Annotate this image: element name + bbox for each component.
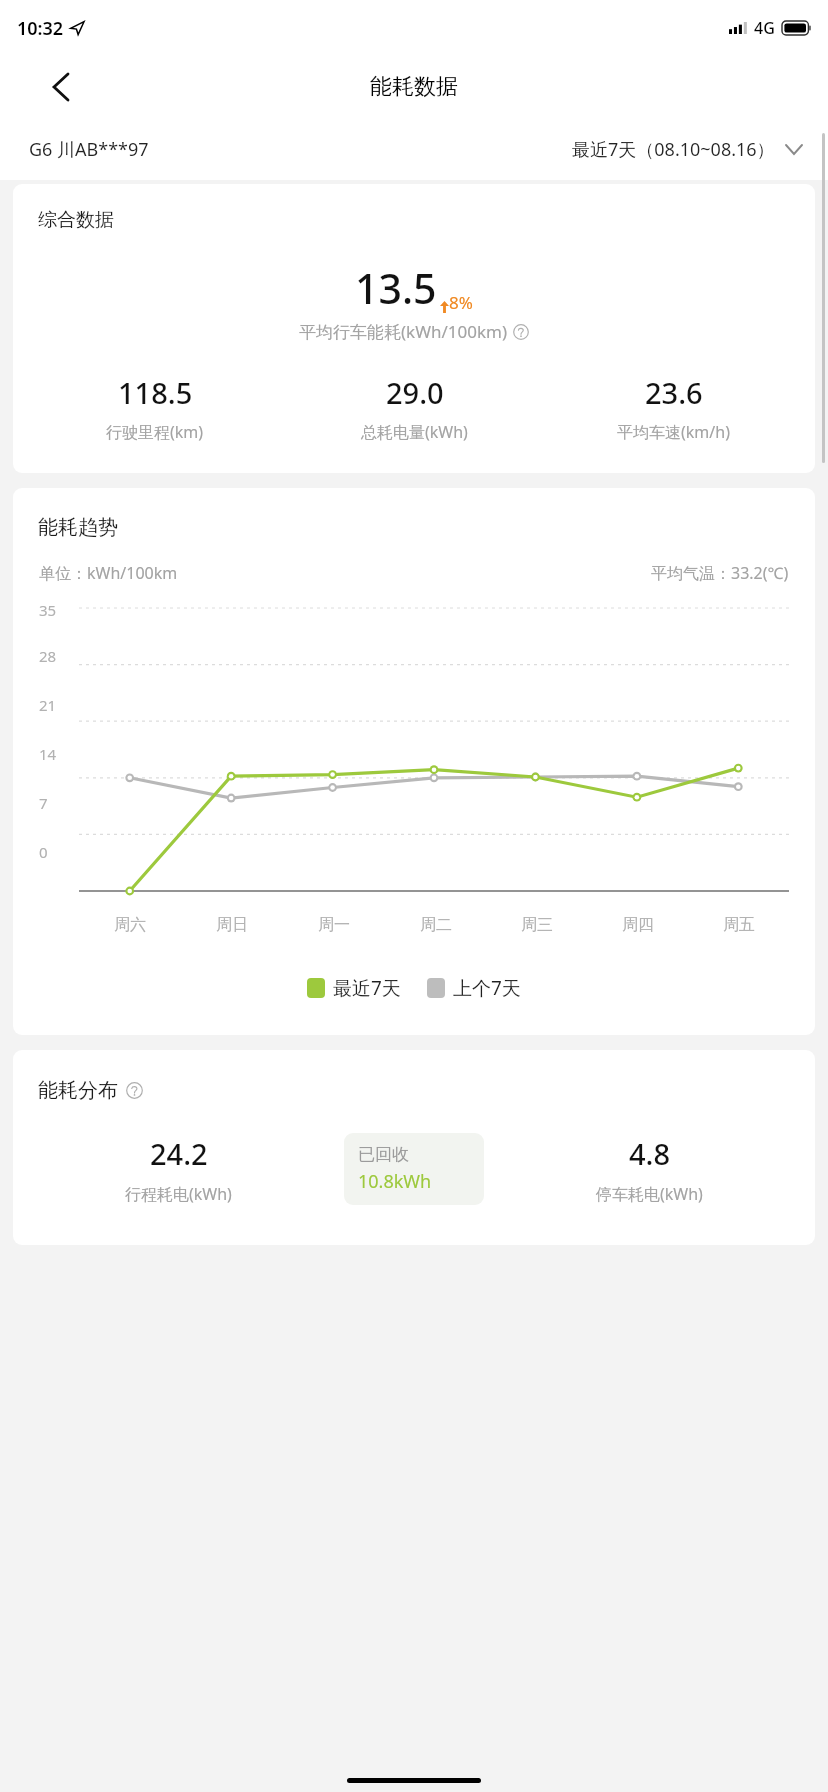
staticText: 周日 xyxy=(216,915,248,935)
staticText: 最近7天（08.10~08.16） xyxy=(572,137,775,162)
staticText: 8% xyxy=(449,291,473,314)
staticText: 29.0 xyxy=(386,373,444,412)
staticText: G6 川AB***97 xyxy=(29,137,149,162)
staticText: 平均行车能耗(kWh/100km) xyxy=(299,320,508,343)
staticText: 23.6 xyxy=(645,373,703,412)
staticText: 行驶里程(km) xyxy=(106,421,204,443)
staticText: 24.2 xyxy=(150,1134,208,1173)
staticText: 13.5 xyxy=(355,260,437,316)
button[interactable]: 最近7天（08.10~08.16） xyxy=(572,137,802,162)
staticText: 综合数据 xyxy=(38,208,114,232)
staticText: 118.5 xyxy=(118,373,193,412)
button[interactable]: Back xyxy=(38,64,84,110)
staticText: 7 xyxy=(39,793,48,813)
staticText: 行程耗电(kWh) xyxy=(125,1183,232,1205)
staticText: 停车耗电(kWh) xyxy=(596,1183,703,1205)
staticText: 28 xyxy=(39,646,57,666)
staticText: 周一 xyxy=(318,915,350,935)
staticText: 10.8kWh xyxy=(358,1169,432,1194)
staticText: 总耗电量(kWh) xyxy=(361,421,468,443)
staticText: 周五 xyxy=(723,915,755,935)
staticText: 21 xyxy=(39,695,57,715)
staticText: 0 xyxy=(39,842,48,862)
staticText: 4.8 xyxy=(629,1134,671,1173)
staticText: 周四 xyxy=(622,915,654,935)
staticText: 周六 xyxy=(114,915,146,935)
staticText: 最近7天 xyxy=(333,975,401,1001)
staticText: 能耗分布 xyxy=(38,1078,118,1103)
staticText: 周二 xyxy=(420,915,452,935)
staticText: 4G xyxy=(754,17,775,39)
staticText: 14 xyxy=(39,744,57,764)
staticText: 上个7天 xyxy=(453,975,521,1001)
staticText: 能耗数据 xyxy=(370,73,458,101)
staticText: 平均气温：33.2(℃) xyxy=(651,562,789,584)
staticText: 周三 xyxy=(521,915,553,935)
staticText: 平均车速(km/h) xyxy=(617,421,730,443)
staticText: 35 xyxy=(39,600,57,620)
staticText: 单位：kWh/100km xyxy=(39,562,178,584)
staticText: 能耗趋势 xyxy=(38,515,118,540)
staticText: 10:32 xyxy=(17,16,64,41)
staticText: 已回收 xyxy=(358,1144,409,1165)
